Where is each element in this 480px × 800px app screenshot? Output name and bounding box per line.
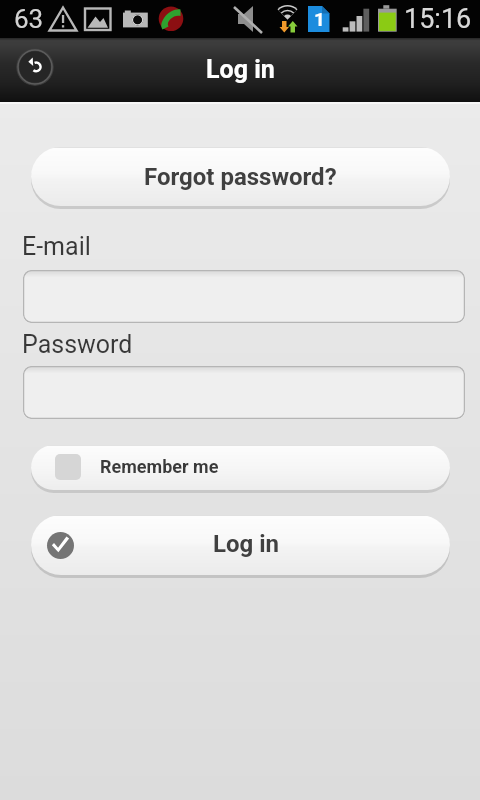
staticText: Log in <box>206 55 275 84</box>
button[interactable]: Log in <box>31 515 450 575</box>
button[interactable] <box>23 366 465 419</box>
button[interactable] <box>23 270 465 323</box>
staticText: Forgot password? <box>144 163 337 191</box>
staticText: Password <box>22 330 133 359</box>
staticText: 63 <box>14 4 44 34</box>
button[interactable]: Back <box>16 48 54 86</box>
staticText: Remember me <box>100 456 219 477</box>
staticText: 15:16 <box>404 3 472 35</box>
button[interactable]: Forgot password? <box>31 147 450 206</box>
button[interactable]: Remember me <box>31 445 450 490</box>
staticText: Log in <box>213 530 280 558</box>
staticText: 1 <box>314 8 325 30</box>
staticText: E-mail <box>22 232 91 261</box>
